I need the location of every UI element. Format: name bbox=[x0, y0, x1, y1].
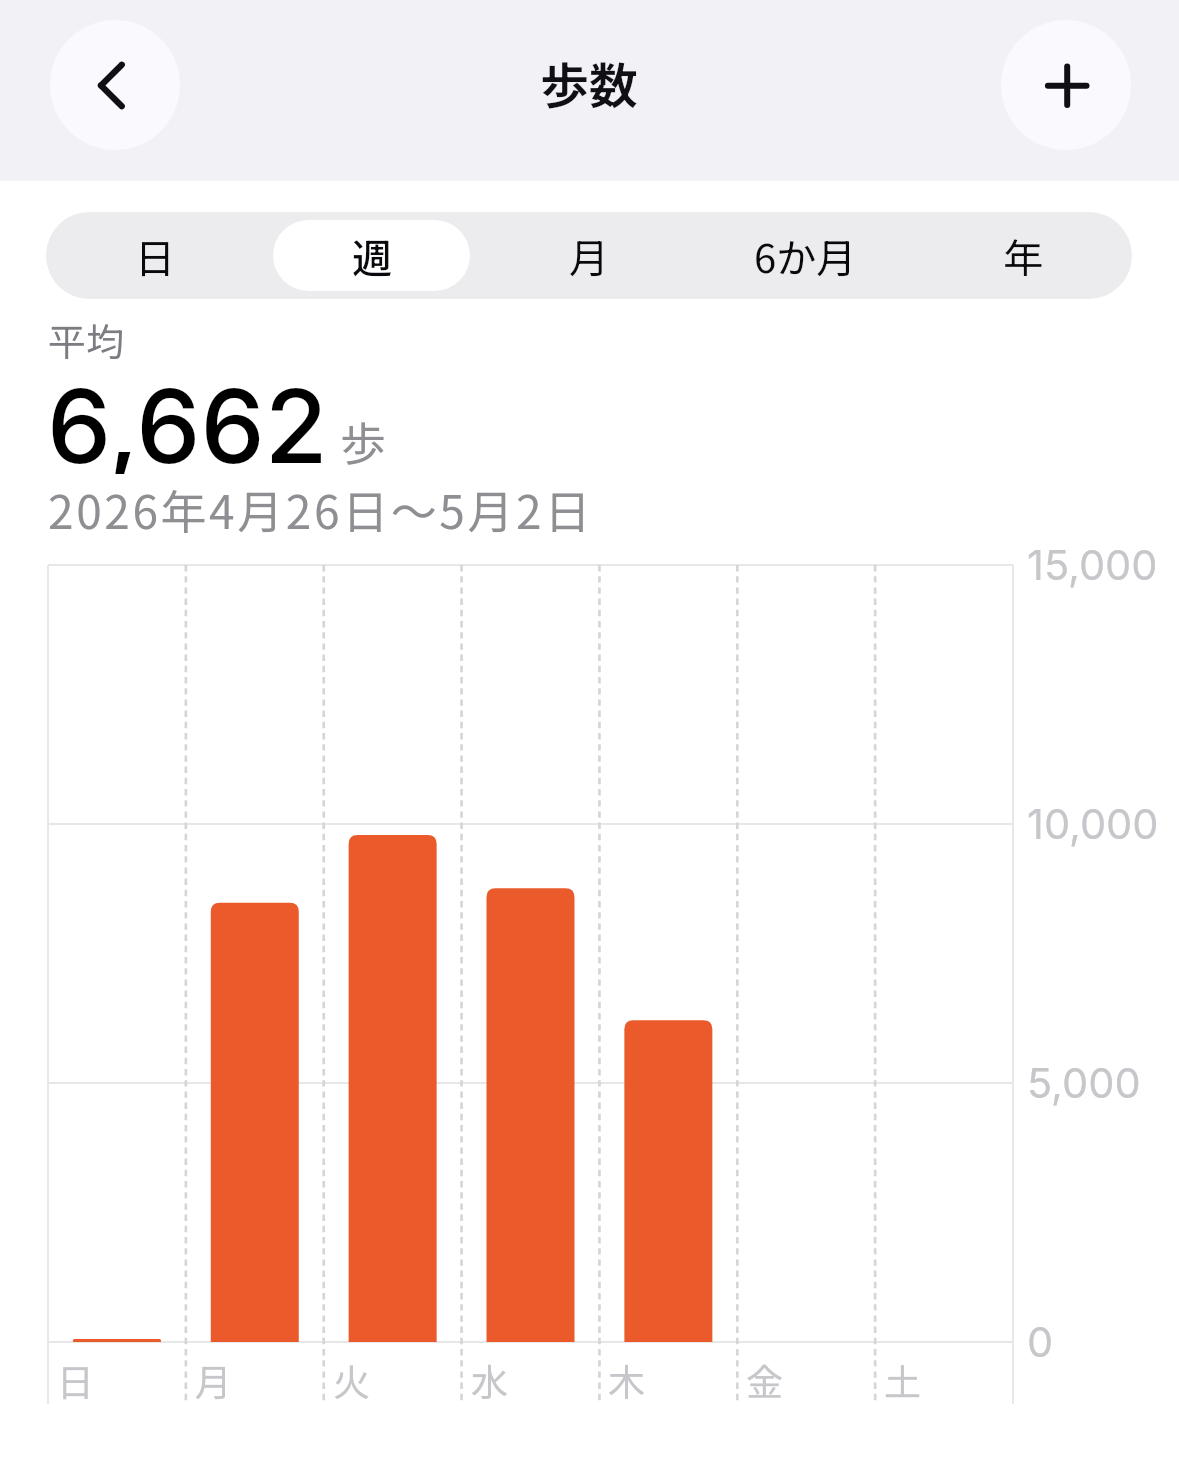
staticText: 5,000 bbox=[1027, 1058, 1141, 1108]
staticText: 水 bbox=[471, 1353, 508, 1407]
staticText: 10,000 bbox=[1027, 799, 1159, 849]
staticText: 土 bbox=[884, 1353, 921, 1407]
staticText: 0 bbox=[1027, 1317, 1054, 1367]
staticText: 歩数 bbox=[540, 47, 639, 117]
staticText: 週 bbox=[352, 227, 392, 285]
staticText: 月 bbox=[195, 1353, 232, 1407]
button[interactable]: 6か月 bbox=[697, 212, 914, 299]
staticText: 金 bbox=[746, 1353, 783, 1407]
staticText: 歩 bbox=[340, 408, 386, 468]
button[interactable]: 日 bbox=[46, 212, 263, 299]
staticText: 月 bbox=[569, 227, 609, 285]
staticText: 年 bbox=[1003, 227, 1043, 285]
staticText: 6か月 bbox=[754, 227, 857, 285]
staticText: 木 bbox=[608, 1353, 645, 1407]
button[interactable]: 週 bbox=[263, 212, 480, 299]
staticText: 2026年4月26日〜5月2日 bbox=[48, 476, 593, 536]
button[interactable]: 月 bbox=[480, 212, 697, 299]
button[interactable]: Back bbox=[50, 20, 180, 150]
staticText: 平均 bbox=[48, 312, 125, 364]
staticText: 火 bbox=[333, 1353, 370, 1407]
button[interactable]: Add data bbox=[1001, 20, 1131, 150]
staticText: 15,000 bbox=[1027, 540, 1158, 590]
staticText: 日 bbox=[135, 227, 175, 285]
staticText: 日 bbox=[57, 1353, 94, 1407]
staticText: 6,662 bbox=[47, 364, 328, 474]
button[interactable]: 年 bbox=[914, 212, 1131, 299]
